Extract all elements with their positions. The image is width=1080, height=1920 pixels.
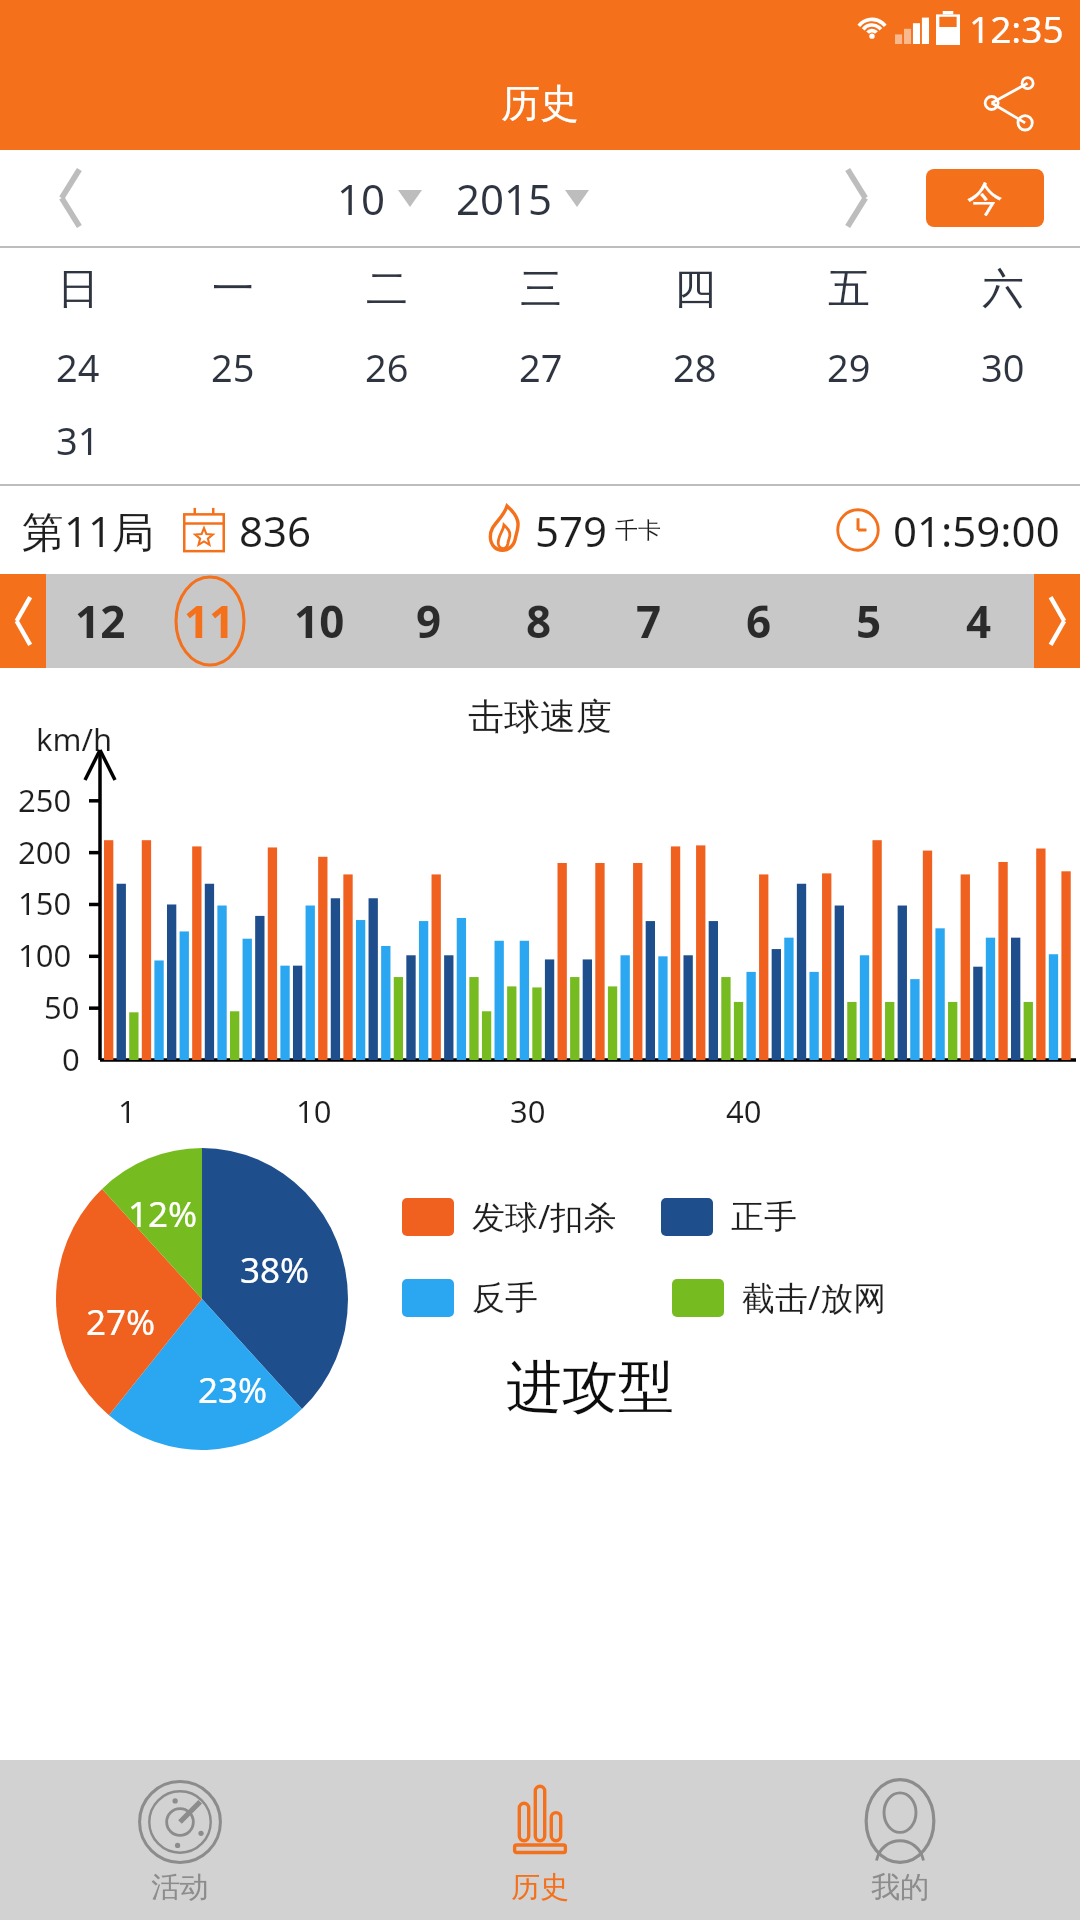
- staticText: 一: [212, 263, 254, 316]
- button[interactable]: 11: [155, 574, 264, 668]
- staticText: 反手: [472, 1277, 538, 1319]
- button[interactable]: 29: [772, 330, 926, 404]
- staticText: 30: [510, 1090, 546, 1132]
- button[interactable]: 发球/扣杀: [402, 1194, 617, 1239]
- button[interactable]: 9: [374, 574, 484, 668]
- staticText: 活动: [151, 1869, 209, 1906]
- staticText: 第11局: [22, 502, 155, 559]
- staticText: 12%: [128, 1190, 198, 1238]
- staticText: 200: [18, 831, 72, 873]
- staticText: 01:59:00: [893, 502, 1060, 559]
- staticText: 8: [526, 591, 552, 651]
- staticText: 历史: [511, 1869, 569, 1906]
- staticText: 我的: [871, 1869, 929, 1906]
- staticText: 0: [62, 1038, 80, 1080]
- staticText: 10: [337, 170, 386, 227]
- button[interactable]: 26: [310, 330, 464, 404]
- button[interactable]: 28: [618, 330, 772, 404]
- button[interactable]: 31: [0, 404, 155, 476]
- button[interactable]: 反手: [402, 1277, 538, 1319]
- staticText: 836: [239, 502, 312, 559]
- staticText: 击球速度: [468, 694, 612, 739]
- staticText: 100: [18, 934, 72, 976]
- button[interactable]: Next sessions: [1034, 574, 1080, 668]
- staticText: 正手: [731, 1196, 797, 1238]
- staticText: 7: [636, 591, 662, 651]
- staticText: 24: [56, 341, 100, 393]
- button[interactable]: 我的: [720, 1760, 1080, 1920]
- staticText: 27%: [86, 1298, 156, 1346]
- button[interactable]: 5: [814, 574, 924, 668]
- button[interactable]: 活动: [0, 1760, 360, 1920]
- button[interactable]: 今: [926, 169, 1044, 227]
- staticText: 28: [673, 341, 717, 393]
- button[interactable]: 截击/放网: [672, 1275, 887, 1320]
- staticText: 9: [416, 591, 442, 651]
- staticText: 10: [296, 1090, 332, 1132]
- button[interactable]: 10: [333, 170, 426, 227]
- staticText: 发球/扣杀: [472, 1194, 617, 1239]
- staticText: 23%: [198, 1366, 268, 1414]
- staticText: 12: [75, 591, 126, 651]
- staticText: km/h: [36, 718, 113, 760]
- button[interactable]: 7: [594, 574, 704, 668]
- staticText: 2015: [456, 170, 553, 227]
- button[interactable]: 8: [484, 574, 594, 668]
- staticText: 30: [981, 341, 1025, 393]
- staticText: 二: [366, 263, 408, 316]
- staticText: 千卡: [615, 516, 661, 545]
- staticText: 12:35: [969, 3, 1064, 53]
- staticText: 进攻型: [506, 1352, 674, 1423]
- staticText: 38%: [240, 1246, 310, 1294]
- staticText: 5: [856, 591, 882, 651]
- button[interactable]: 10: [264, 574, 374, 668]
- staticText: 29: [827, 341, 871, 393]
- staticText: 579: [535, 502, 608, 559]
- staticText: 截击/放网: [742, 1275, 887, 1320]
- staticText: 11: [184, 591, 235, 651]
- staticText: 三: [520, 263, 562, 316]
- button[interactable]: Previous month: [0, 150, 140, 246]
- button[interactable]: 24: [0, 330, 155, 404]
- button[interactable]: 27: [464, 330, 618, 404]
- staticText: 历史: [501, 79, 579, 128]
- staticText: 50: [44, 986, 80, 1028]
- button[interactable]: 历史: [360, 1760, 720, 1920]
- staticText: 150: [18, 882, 72, 924]
- button[interactable]: 30: [926, 330, 1080, 404]
- staticText: 4: [966, 591, 992, 651]
- staticText: 6: [746, 591, 772, 651]
- button[interactable]: 12: [46, 574, 155, 668]
- staticText: 1: [118, 1090, 136, 1132]
- button[interactable]: 正手: [661, 1196, 797, 1238]
- staticText: 今: [967, 176, 1003, 221]
- staticText: 40: [726, 1090, 762, 1132]
- staticText: 27: [519, 341, 563, 393]
- button[interactable]: 6: [704, 574, 814, 668]
- staticText: 26: [365, 341, 409, 393]
- staticText: 25: [211, 341, 255, 393]
- button[interactable]: Next month: [786, 150, 926, 246]
- staticText: 六: [982, 263, 1024, 316]
- button[interactable]: Share: [978, 72, 1040, 134]
- staticText: 日: [57, 263, 99, 316]
- staticText: 10: [294, 591, 345, 651]
- button[interactable]: Previous sessions: [0, 574, 46, 668]
- button[interactable]: 25: [155, 330, 310, 404]
- staticText: 250: [18, 779, 72, 821]
- staticText: 31: [56, 414, 100, 466]
- staticText: 四: [674, 263, 716, 316]
- staticText: 五: [828, 263, 870, 316]
- button[interactable]: 2015: [452, 170, 593, 227]
- button[interactable]: 4: [924, 574, 1034, 668]
